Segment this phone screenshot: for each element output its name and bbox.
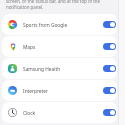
button[interactable]: Toggle on [103, 109, 116, 116]
staticText: Interpreter [23, 88, 103, 95]
button[interactable]: Toggle on [103, 43, 116, 50]
staticText: screen, or the status bar, and at the to… [6, 0, 101, 4]
button[interactable]: Maps [2, 36, 117, 57]
staticText: Maps [23, 44, 103, 51]
staticText: Clock [23, 110, 103, 117]
staticText: notification panel. [6, 4, 44, 10]
button[interactable]: Interpreter [2, 80, 117, 101]
staticText: Sports from Google [23, 22, 103, 29]
staticText: Samsung Health [23, 66, 103, 73]
button[interactable]: Toggle on [103, 21, 116, 28]
button[interactable]: Clock [2, 102, 117, 123]
button[interactable]: Toggle on [103, 87, 116, 94]
button[interactable]: Samsung Health [2, 58, 117, 79]
button[interactable]: Sports from Google [2, 14, 117, 35]
button[interactable]: Toggle on [103, 65, 116, 72]
